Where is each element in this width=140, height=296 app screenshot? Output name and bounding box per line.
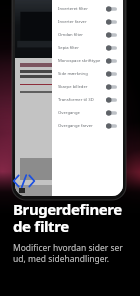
staticText: Overgange farver bbox=[58, 123, 103, 129]
button[interactable]: Slået fra bbox=[106, 97, 117, 103]
button[interactable]: Slået fra bbox=[106, 71, 117, 77]
staticText: Inverteret filter bbox=[58, 6, 103, 12]
button[interactable]: Slået fra bbox=[106, 19, 117, 25]
button[interactable]: Slået fra bbox=[106, 32, 117, 38]
button[interactable]: Slået fra bbox=[106, 58, 117, 64]
staticText: Inverter farver bbox=[58, 19, 103, 25]
button[interactable]: Transformer til 3D bbox=[58, 93, 117, 106]
staticText: Overgange gennemsigtige bbox=[58, 110, 103, 116]
button[interactable]: Slået fra bbox=[106, 6, 117, 12]
button[interactable]: Overgange gennemsigtige bbox=[58, 106, 117, 119]
staticText: Omdan filter bbox=[58, 32, 103, 38]
button[interactable]: Monospace skrifttype bbox=[58, 54, 117, 67]
button[interactable]: Sepia filter bbox=[58, 41, 117, 54]
button[interactable]: Omdan filter bbox=[58, 28, 117, 41]
staticText: Transformer til 3D bbox=[58, 97, 103, 103]
button[interactable]: Slået fra bbox=[106, 45, 117, 51]
button[interactable]: Slået fra bbox=[106, 110, 117, 116]
button[interactable]: Inverter farver bbox=[58, 15, 117, 28]
button[interactable]: Inverteret filter bbox=[58, 2, 117, 15]
staticText: Side mærkning bbox=[58, 71, 103, 77]
button[interactable]: Skarpe billeder bbox=[58, 80, 117, 93]
staticText: Skarpe billeder bbox=[58, 84, 103, 90]
staticText: Modificer hvordan sider ser ud, med side… bbox=[13, 242, 130, 264]
staticText: Sepia filter bbox=[58, 45, 103, 51]
button[interactable]: Slået fra bbox=[106, 123, 117, 129]
staticText: Monospace skrifttype bbox=[58, 58, 103, 64]
button[interactable]: Side mærkning bbox=[58, 67, 117, 80]
button[interactable]: Slået fra bbox=[106, 84, 117, 90]
button[interactable]: Overgange farver bbox=[58, 119, 117, 132]
button[interactable]: Kode bbox=[13, 174, 35, 188]
staticText: Brugerdefinerede filtre bbox=[13, 199, 130, 237]
